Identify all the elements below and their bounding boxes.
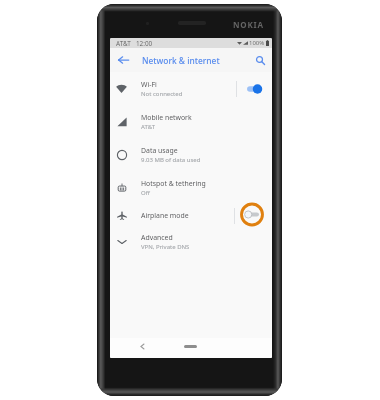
button[interactable]: Search	[252, 52, 268, 68]
staticText: Advanced	[141, 233, 173, 242]
staticText: AT&T	[141, 123, 155, 131]
button[interactable]: Airplane mode	[110, 204, 272, 227]
button[interactable]: Advanced	[110, 228, 272, 256]
button[interactable]: Wi-Fi toggle	[243, 82, 265, 96]
staticText: Airplane mode	[141, 211, 189, 220]
staticText: Wi-Fi	[141, 80, 157, 89]
staticText: Hotspot & tethering	[141, 179, 206, 188]
staticText: Not connected	[141, 90, 183, 98]
staticText: 100%	[249, 39, 265, 47]
staticText: Mobile network	[141, 113, 192, 122]
button[interactable]: Hotspot & tethering	[110, 171, 272, 204]
button[interactable]: Home	[184, 345, 197, 348]
staticText: 9.03 MB of data used	[141, 156, 201, 164]
button[interactable]: Back	[115, 52, 131, 68]
staticText: AT&T 12:00	[116, 39, 153, 48]
staticText: Data usage	[141, 146, 178, 155]
staticText: Network & internet	[142, 55, 220, 66]
button[interactable]: Data usage	[110, 138, 272, 171]
button[interactable]: Wi-Fi	[110, 72, 272, 105]
button[interactable]: Airplane mode toggle	[238, 203, 266, 226]
staticText: Off	[141, 189, 150, 197]
staticText: VPN, Private DNS	[141, 243, 190, 251]
button[interactable]: Mobile network	[110, 105, 272, 138]
staticText: NOKIA	[233, 19, 264, 30]
button[interactable]: Back	[137, 341, 148, 352]
